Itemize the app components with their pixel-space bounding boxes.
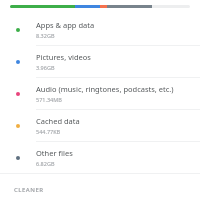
button[interactable]: Apps & app data — [0, 14, 200, 45]
staticText: 6.82GB — [36, 160, 55, 167]
staticText: Apps & app data — [36, 20, 95, 30]
staticText: 571.34MB — [36, 96, 62, 103]
staticText: Audio (music, ringtones, podcasts, etc.) — [36, 84, 174, 94]
button[interactable]: Pictures, videos — [0, 46, 200, 77]
button[interactable]: Cached data — [0, 110, 200, 141]
staticText: CLEANER — [14, 186, 44, 194]
staticText: Pictures, videos — [36, 52, 91, 62]
staticText: 3.96GB — [36, 64, 55, 71]
button[interactable]: CLEANER — [0, 184, 200, 200]
button[interactable]: Other files — [0, 142, 200, 173]
staticText: Other files — [36, 148, 73, 158]
button[interactable]: Audio (music, ringtones, podcasts, etc.) — [0, 78, 200, 109]
staticText: 8.32GB — [36, 32, 55, 39]
staticText: Cached data — [36, 116, 80, 126]
staticText: 544.77KB — [36, 128, 61, 135]
